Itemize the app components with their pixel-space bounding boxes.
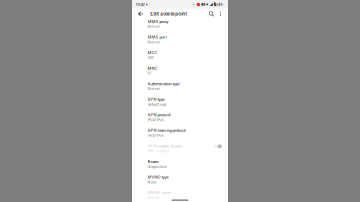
staticText: APN roaming protocol <box>147 128 185 133</box>
staticText: MVNO value <box>147 190 170 195</box>
staticText: 64% <box>216 2 223 7</box>
staticText: 10:42 <box>136 2 145 7</box>
button[interactable]: MCC <box>132 47 228 63</box>
button[interactable]: Bearer <box>132 156 228 172</box>
staticText: default,supl <box>147 102 166 107</box>
button[interactable]: Authentication type <box>132 78 228 94</box>
staticText: MVNO type <box>147 175 168 180</box>
button[interactable]: APN roaming protocol <box>132 125 228 141</box>
staticText: IPv4/IPv6 <box>147 118 163 122</box>
button[interactable]: Edit access point <box>150 9 187 19</box>
staticText: IPv4/IPv6 <box>147 133 163 138</box>
staticText: MMS port <box>147 35 166 40</box>
button[interactable]: Search <box>206 9 216 19</box>
button[interactable]: APN protocol <box>132 109 228 125</box>
button[interactable]: MVNO value <box>132 187 228 202</box>
staticText: MNC <box>147 66 157 71</box>
staticText: 01 <box>147 71 151 75</box>
staticText: Edit access point <box>150 11 187 17</box>
button[interactable]: MMS port <box>132 32 228 47</box>
button[interactable]: MNC <box>132 63 228 78</box>
button[interactable]: Back <box>136 9 144 19</box>
staticText: APN enabled <box>147 149 168 153</box>
button[interactable]: MVNO type <box>132 172 228 187</box>
staticText: 250 <box>147 55 153 60</box>
staticText: Not set <box>147 87 159 91</box>
staticText: APN protocol <box>147 112 170 117</box>
staticText: Bearer <box>147 159 158 164</box>
button[interactable]: APN enable/disable <box>132 141 228 156</box>
button[interactable]: APN type <box>132 94 228 109</box>
staticText: Not set <box>147 196 159 200</box>
staticText: APN enable/disable <box>147 143 182 148</box>
button[interactable]: More options <box>216 9 224 19</box>
staticText: MMS proxy <box>147 19 168 24</box>
staticText: Not set <box>147 24 159 29</box>
staticText: APN type <box>147 97 164 102</box>
staticText: Not set <box>147 40 159 44</box>
staticText: Unspecified <box>147 164 166 169</box>
staticText: MCC <box>147 50 157 55</box>
staticText: Authentication type <box>147 81 179 86</box>
button[interactable]: MMS proxy <box>132 16 228 32</box>
staticText: None <box>147 180 156 184</box>
